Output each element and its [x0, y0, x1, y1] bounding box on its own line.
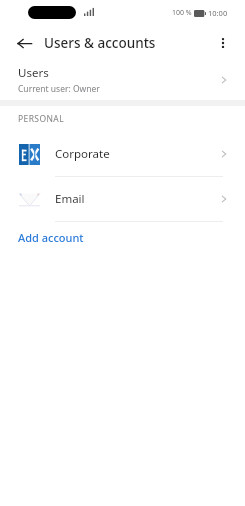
staticText: 10:00: [208, 8, 228, 18]
staticText: Email: [55, 191, 219, 207]
button[interactable]: More options: [211, 31, 235, 55]
button[interactable]: Add account: [0, 222, 245, 252]
staticText: Add account: [18, 230, 84, 245]
staticText: PERSONAL: [18, 113, 65, 125]
button[interactable]: Corporate: [0, 132, 245, 176]
staticText: Users: [18, 65, 49, 81]
button[interactable]: Users: [0, 60, 245, 100]
staticText: Current user: Owner: [18, 83, 100, 95]
button[interactable]: Email: [0, 177, 245, 221]
staticText: 100 %: [172, 8, 192, 18]
staticText: Users & accounts: [44, 34, 156, 52]
staticText: Corporate: [55, 146, 219, 162]
button[interactable]: Back: [12, 31, 36, 55]
